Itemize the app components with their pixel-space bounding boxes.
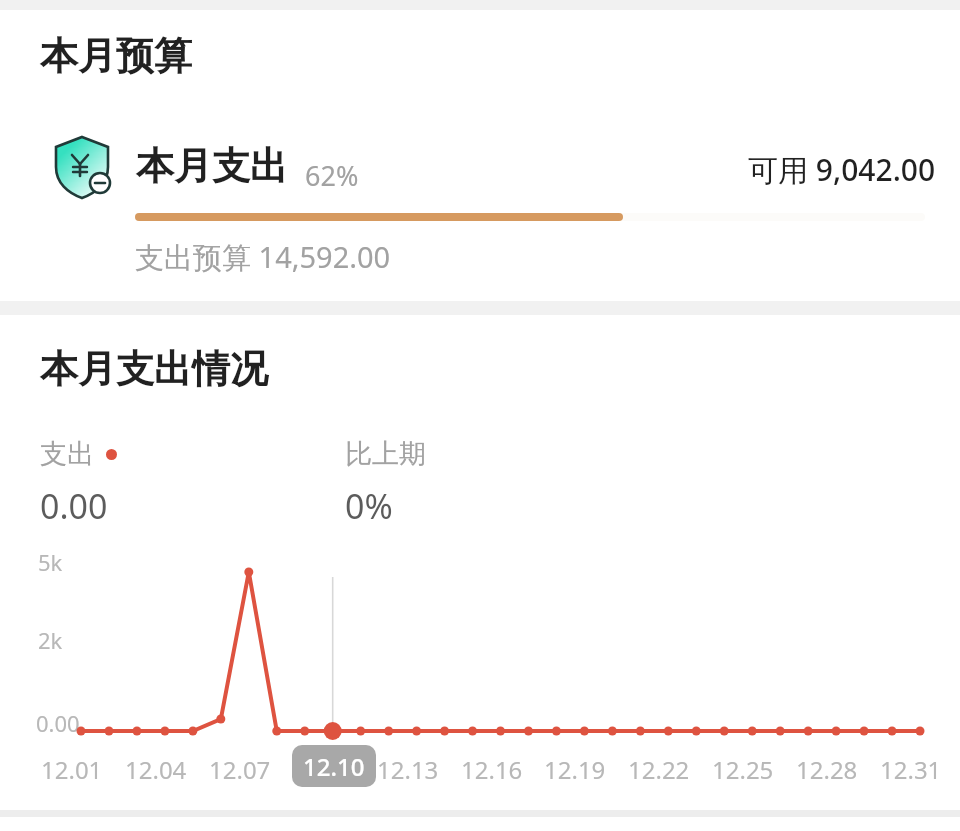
button[interactable]: 比上期 xyxy=(345,437,426,529)
staticText: 62% xyxy=(305,157,359,194)
staticText: 比上期 xyxy=(345,437,426,471)
staticText: 0% xyxy=(345,483,393,529)
staticText: 12.13 xyxy=(377,753,439,786)
staticText: 支出预算 14,592.00 xyxy=(135,237,391,277)
staticText: 12.22 xyxy=(628,753,690,786)
staticText: 12.28 xyxy=(796,753,858,786)
staticText: 可用 9,042.00 xyxy=(748,149,936,190)
staticText: 12.01 xyxy=(41,753,103,786)
staticText: 12.07 xyxy=(209,753,271,786)
staticText: 本月支出 xyxy=(136,142,288,190)
staticText: 12.25 xyxy=(712,753,774,786)
staticText: 0.00 xyxy=(40,483,108,529)
staticText: 12.31 xyxy=(880,753,942,786)
staticText: 2k xyxy=(38,625,63,655)
staticText: 12.19 xyxy=(544,753,606,786)
staticText: 5k xyxy=(38,547,63,577)
staticText: 本月预算 xyxy=(40,32,192,80)
button[interactable]: 本月预算 xyxy=(0,10,960,301)
staticText: 本月支出情况 xyxy=(40,345,268,393)
staticText: 0.00 xyxy=(36,708,80,738)
staticText: 12.10 xyxy=(303,750,365,783)
staticText: 支出 xyxy=(40,437,94,471)
staticText: 12.16 xyxy=(461,753,523,786)
other: 本月支出预算 xyxy=(46,131,118,203)
button[interactable]: 支出 xyxy=(40,437,117,529)
staticText: 12.04 xyxy=(125,753,187,786)
button[interactable]: 12.10 xyxy=(292,745,376,787)
